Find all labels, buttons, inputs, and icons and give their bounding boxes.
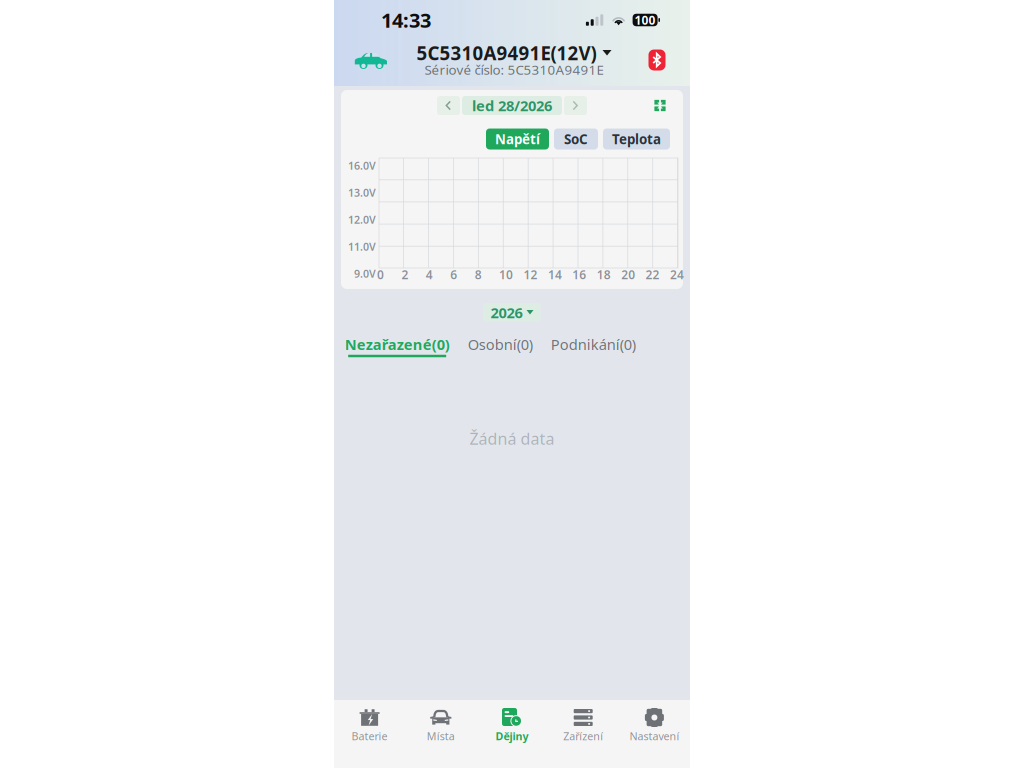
button[interactable]: Bluetooth xyxy=(638,43,676,77)
staticText: Nezařazené(0) xyxy=(345,334,450,354)
staticText: Baterie xyxy=(352,729,388,743)
staticText: 10 xyxy=(499,266,513,282)
button[interactable]: Dějiny xyxy=(476,700,548,768)
button[interactable]: Nastavení xyxy=(619,700,690,768)
staticText: SoC xyxy=(564,130,588,148)
button[interactable]: 5C5310A9491E(12V) xyxy=(416,44,611,76)
staticText: Teplota xyxy=(612,130,661,148)
button[interactable]: Podnikání(0) xyxy=(551,337,636,357)
staticText: Sériové číslo: 5C5310A9491E xyxy=(424,61,603,78)
button[interactable]: Nezařazené(0) xyxy=(345,337,450,357)
staticText: Napětí xyxy=(495,130,540,148)
staticText: Žádná data xyxy=(469,428,554,449)
staticText: 14 xyxy=(548,266,562,282)
button[interactable]: Teplota xyxy=(603,128,670,149)
staticText: 16.0V xyxy=(348,158,376,173)
staticText: 12 xyxy=(523,266,537,282)
button[interactable]: Napětí xyxy=(486,128,549,149)
button[interactable]: led 28/2026 xyxy=(462,96,562,115)
staticText: 24 xyxy=(670,266,684,282)
staticText: 18 xyxy=(597,266,611,282)
staticText: 20 xyxy=(621,266,635,282)
staticText: 8 xyxy=(475,266,482,282)
staticText: 11.0V xyxy=(348,239,376,254)
staticText: 14:33 xyxy=(381,7,431,33)
staticText: 2 xyxy=(401,266,408,282)
staticText: 5C5310A9491E(12V) xyxy=(416,41,596,65)
button[interactable]: 2026 xyxy=(483,303,540,322)
staticText: Zařízení xyxy=(563,729,603,743)
button[interactable]: SoC xyxy=(554,128,598,149)
staticText: Dějiny xyxy=(495,729,528,743)
button[interactable]: Baterie xyxy=(334,700,405,768)
button[interactable]: Místa xyxy=(405,700,476,768)
staticText: 16 xyxy=(572,266,586,282)
staticText: 6 xyxy=(450,266,457,282)
staticText: 100 xyxy=(635,12,656,28)
staticText: 2026 xyxy=(490,303,522,322)
staticText: 0 xyxy=(377,266,384,282)
staticText: 22 xyxy=(646,266,660,282)
button[interactable]: Zařízení xyxy=(548,700,619,768)
button[interactable]: Celá obrazovka xyxy=(649,95,671,115)
staticText: 4 xyxy=(426,266,433,282)
staticText: 9.0V xyxy=(354,266,376,281)
staticText: Nastavení xyxy=(629,729,679,743)
staticText: Místa xyxy=(427,729,455,743)
staticText: 12.0V xyxy=(348,212,376,227)
button[interactable]: Další den xyxy=(564,96,587,115)
staticText: Podnikání(0) xyxy=(551,334,636,354)
staticText: Osobní(0) xyxy=(468,334,533,354)
staticText: led 28/2026 xyxy=(472,96,552,115)
staticText: 13.0V xyxy=(348,185,376,200)
button[interactable]: Předchozí den xyxy=(437,96,460,115)
button[interactable]: Osobní(0) xyxy=(468,337,533,357)
button[interactable]: Vozidlo xyxy=(352,43,390,77)
